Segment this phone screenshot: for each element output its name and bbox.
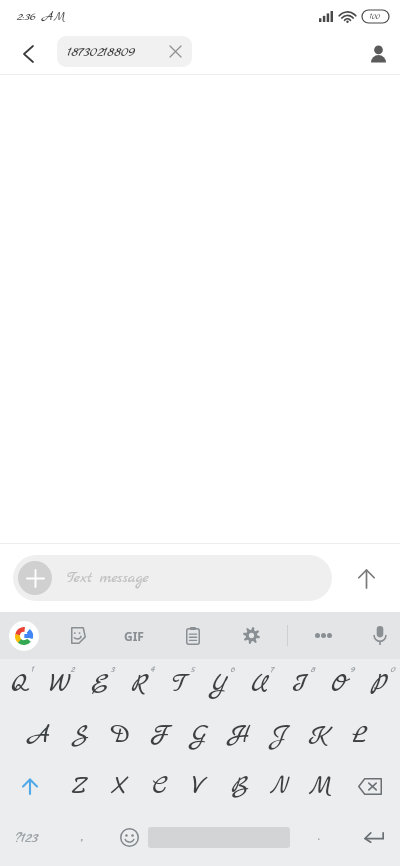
staticText: Text message	[67, 568, 149, 588]
staticText: U	[251, 668, 270, 702]
staticText: ?123	[15, 828, 39, 848]
button[interactable]: Voice input	[360, 612, 400, 659]
staticText: C	[152, 770, 169, 804]
button[interactable]: Z	[60, 761, 100, 812]
button[interactable]: 18730218809	[57, 36, 192, 67]
staticText: 0	[391, 663, 396, 675]
staticText: Z	[71, 770, 89, 804]
button[interactable]: ?123	[0, 812, 54, 863]
button[interactable]: B	[220, 761, 260, 812]
button[interactable]: N	[260, 761, 300, 812]
button[interactable]: Y	[200, 659, 240, 710]
button[interactable]: Back	[0, 33, 56, 75]
staticText: 3	[111, 663, 116, 675]
staticText: 100	[370, 11, 381, 22]
staticText: 2:36 AM	[17, 8, 65, 25]
button[interactable]: Emoji	[110, 812, 148, 863]
button[interactable]: Send	[332, 544, 400, 612]
button[interactable]: L	[340, 710, 380, 761]
button[interactable]: Clipboard	[173, 612, 213, 659]
staticText: 1	[32, 663, 35, 675]
button[interactable]: W	[40, 659, 80, 710]
staticText: 2	[71, 663, 76, 675]
staticText: L	[352, 719, 368, 753]
button[interactable]: H	[220, 710, 260, 761]
staticText: R	[131, 668, 149, 702]
button[interactable]: M	[300, 761, 340, 812]
button[interactable]: Google search	[0, 612, 47, 659]
staticText: 9	[351, 663, 355, 675]
button[interactable]: V	[180, 761, 220, 812]
staticText: T	[172, 668, 188, 702]
staticText: B	[231, 770, 250, 804]
staticText: 4	[151, 663, 155, 675]
staticText: I	[292, 668, 308, 702]
button[interactable]: Text message	[13, 555, 332, 601]
staticText: N	[270, 770, 290, 804]
button[interactable]: F	[140, 710, 180, 761]
button[interactable]: P	[360, 659, 400, 710]
button[interactable]: I	[280, 659, 320, 710]
staticText: Y	[211, 668, 229, 702]
staticText: 8	[311, 663, 316, 675]
staticText: X	[111, 770, 129, 804]
staticText: P	[371, 668, 389, 702]
staticText: O	[331, 668, 350, 702]
button[interactable]: Q	[0, 659, 40, 710]
button[interactable]: GIF	[114, 612, 154, 659]
staticText: ,	[81, 824, 84, 846]
button[interactable]: Contact details	[355, 33, 400, 75]
staticText: D	[111, 719, 130, 753]
staticText: GIF	[124, 628, 144, 644]
staticText: M	[309, 770, 331, 804]
staticText: F	[150, 719, 171, 753]
staticText: A	[29, 719, 51, 753]
button[interactable]: S	[60, 710, 100, 761]
staticText: S	[72, 719, 89, 753]
staticText: 18730218809	[68, 42, 135, 62]
staticText: 5	[191, 663, 195, 675]
staticText: J	[271, 719, 290, 753]
staticText: V	[192, 770, 208, 804]
button[interactable]: Backspace	[340, 761, 400, 812]
staticText: Q	[11, 668, 29, 702]
button[interactable]: T	[160, 659, 200, 710]
button[interactable]: K	[300, 710, 340, 761]
button[interactable]: A	[20, 710, 60, 761]
button[interactable]: Settings	[231, 612, 271, 659]
button[interactable]: D	[100, 710, 140, 761]
staticText: H	[229, 719, 252, 753]
button[interactable]: More options	[303, 612, 343, 659]
button[interactable]: Enter	[348, 812, 400, 863]
button[interactable]: Shift	[0, 761, 60, 812]
staticText: K	[309, 719, 331, 753]
button[interactable]: J	[260, 710, 300, 761]
button[interactable]: E	[80, 659, 120, 710]
staticText: W	[49, 668, 71, 702]
staticText: 7	[271, 663, 275, 675]
staticText: 6	[231, 663, 236, 675]
staticText: E	[91, 668, 110, 702]
button[interactable]: R	[120, 659, 160, 710]
button[interactable]: C	[140, 761, 180, 812]
button[interactable]: U	[240, 659, 280, 710]
staticText: G	[191, 719, 210, 753]
button[interactable]: Stickers	[57, 612, 97, 659]
button[interactable]: G	[180, 710, 220, 761]
button[interactable]: X	[100, 761, 140, 812]
staticText: .	[318, 824, 321, 846]
button[interactable]: O	[320, 659, 360, 710]
